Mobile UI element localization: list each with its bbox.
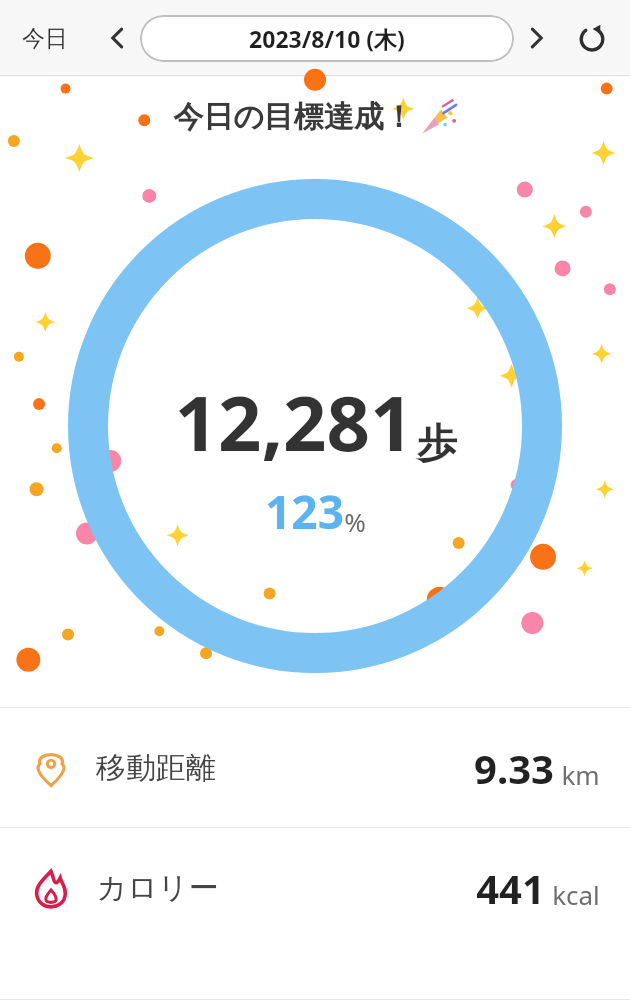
button[interactable]: 次の日 [514,16,558,60]
staticText: 歩 [417,418,457,468]
staticText: kcal [552,877,600,912]
staticText: 2023/8/10 (木) [249,23,405,54]
staticText: 今日の目標達成！ [173,98,414,136]
staticText: 12,281 [174,370,414,474]
staticText: 移動距離 [96,749,216,787]
staticText: km [561,757,600,792]
button[interactable]: 移動距離 [0,708,630,827]
staticText: % [344,504,366,539]
staticText: カロリー [96,869,219,907]
button[interactable]: 2023/8/10 (木) [140,15,514,62]
button[interactable]: カロリー [0,828,630,947]
button[interactable]: 前の日 [96,16,140,60]
button[interactable]: 更新 [568,14,616,62]
staticText: 今日 [22,24,68,53]
staticText: 441 [476,861,545,915]
staticText: 9.33 [474,741,554,795]
button[interactable]: 今日 [14,18,76,59]
staticText: 123 [265,480,344,543]
